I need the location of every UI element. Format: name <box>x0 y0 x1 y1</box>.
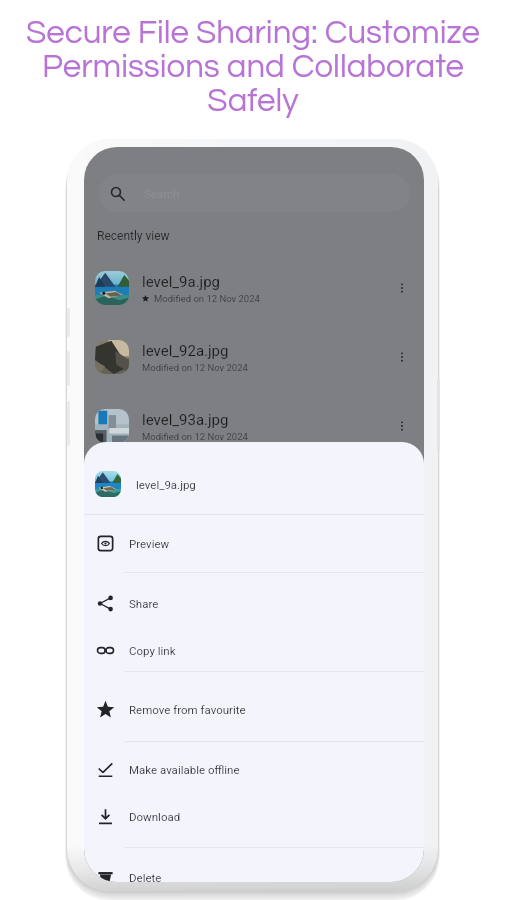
staticText: Share <box>129 597 159 610</box>
button[interactable]: Delete <box>84 854 424 882</box>
button[interactable]: More options <box>392 278 412 298</box>
button[interactable]: Copy link <box>84 627 424 674</box>
staticText: Remove from favourite <box>129 703 246 716</box>
staticText: Download <box>129 810 181 823</box>
staticText: level_92a.jpg <box>142 342 229 360</box>
button[interactable]: level_93a.jpg <box>84 402 424 450</box>
button[interactable]: More options <box>392 347 412 367</box>
staticText: Secure File Sharing: Customize Permissio… <box>24 16 482 118</box>
staticText: level_9a.jpg <box>142 273 221 291</box>
staticText: Delete <box>129 871 162 882</box>
staticText: Make available offline <box>129 763 240 776</box>
button[interactable]: level_9a.jpg <box>84 460 424 508</box>
button[interactable]: Remove from favourite <box>84 686 424 733</box>
button[interactable]: Make available offline <box>84 746 424 793</box>
staticText: Search <box>144 187 180 200</box>
button[interactable]: Share <box>84 580 424 627</box>
button[interactable]: level_92a.jpg <box>84 333 424 381</box>
staticText: level_93a.jpg <box>142 411 229 429</box>
staticText: Modified on 12 Nov 2024 <box>142 362 248 373</box>
staticText: level_9a.jpg <box>136 478 196 491</box>
button[interactable]: Preview <box>84 520 424 567</box>
staticText: Modified on 12 Nov 2024 <box>142 431 248 442</box>
staticText: Modified on 12 Nov 2024 <box>154 293 260 304</box>
button[interactable]: Search <box>99 174 410 212</box>
button[interactable]: Download <box>84 793 424 840</box>
button[interactable]: level_9a.jpg <box>84 264 424 312</box>
staticText: Recently view <box>97 229 170 243</box>
staticText: Copy link <box>129 644 176 657</box>
button[interactable]: More options <box>392 416 412 436</box>
staticText: Preview <box>129 537 170 550</box>
